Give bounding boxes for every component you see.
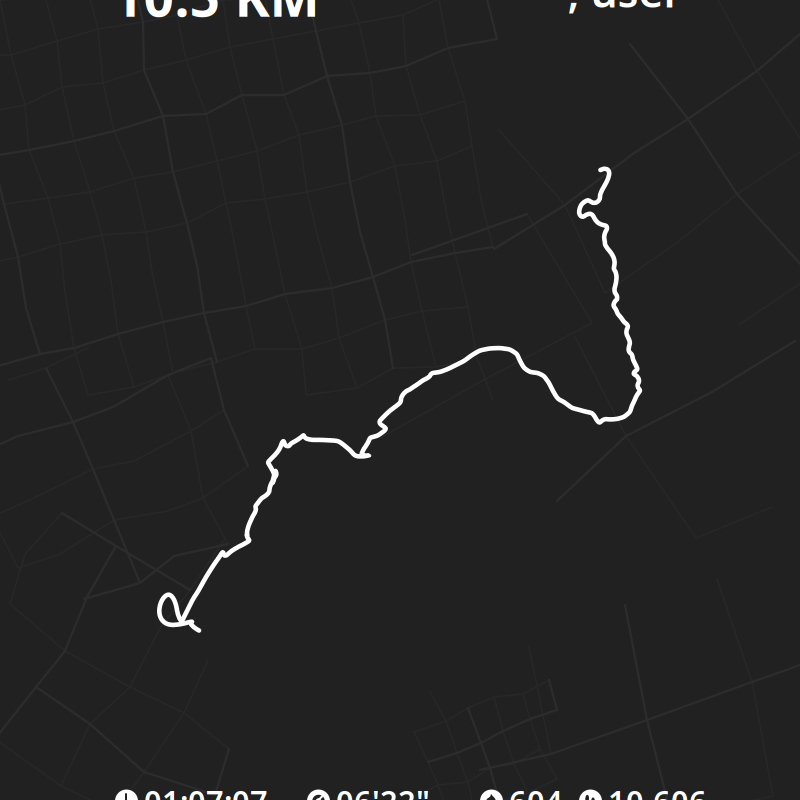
- button[interactable]: , user: [567, 0, 682, 19]
- button[interactable]: 10,606 steps: [579, 788, 800, 800]
- staticText: 10.5 KM: [112, 0, 319, 31]
- button[interactable]: 604 calories: [480, 788, 800, 800]
- staticText: 01:07:07: [144, 781, 268, 800]
- staticText: 06'22": [336, 781, 430, 800]
- staticText: 604: [509, 781, 563, 800]
- button[interactable]: Duration 1 hour 7 minutes 7 seconds: [115, 788, 800, 800]
- button[interactable]: Route map: [0, 0, 800, 800]
- staticText: 10,606: [608, 781, 707, 800]
- button[interactable]: Average pace 6 minutes 22 seconds per ki…: [307, 788, 800, 800]
- staticText: , user: [567, 0, 682, 19]
